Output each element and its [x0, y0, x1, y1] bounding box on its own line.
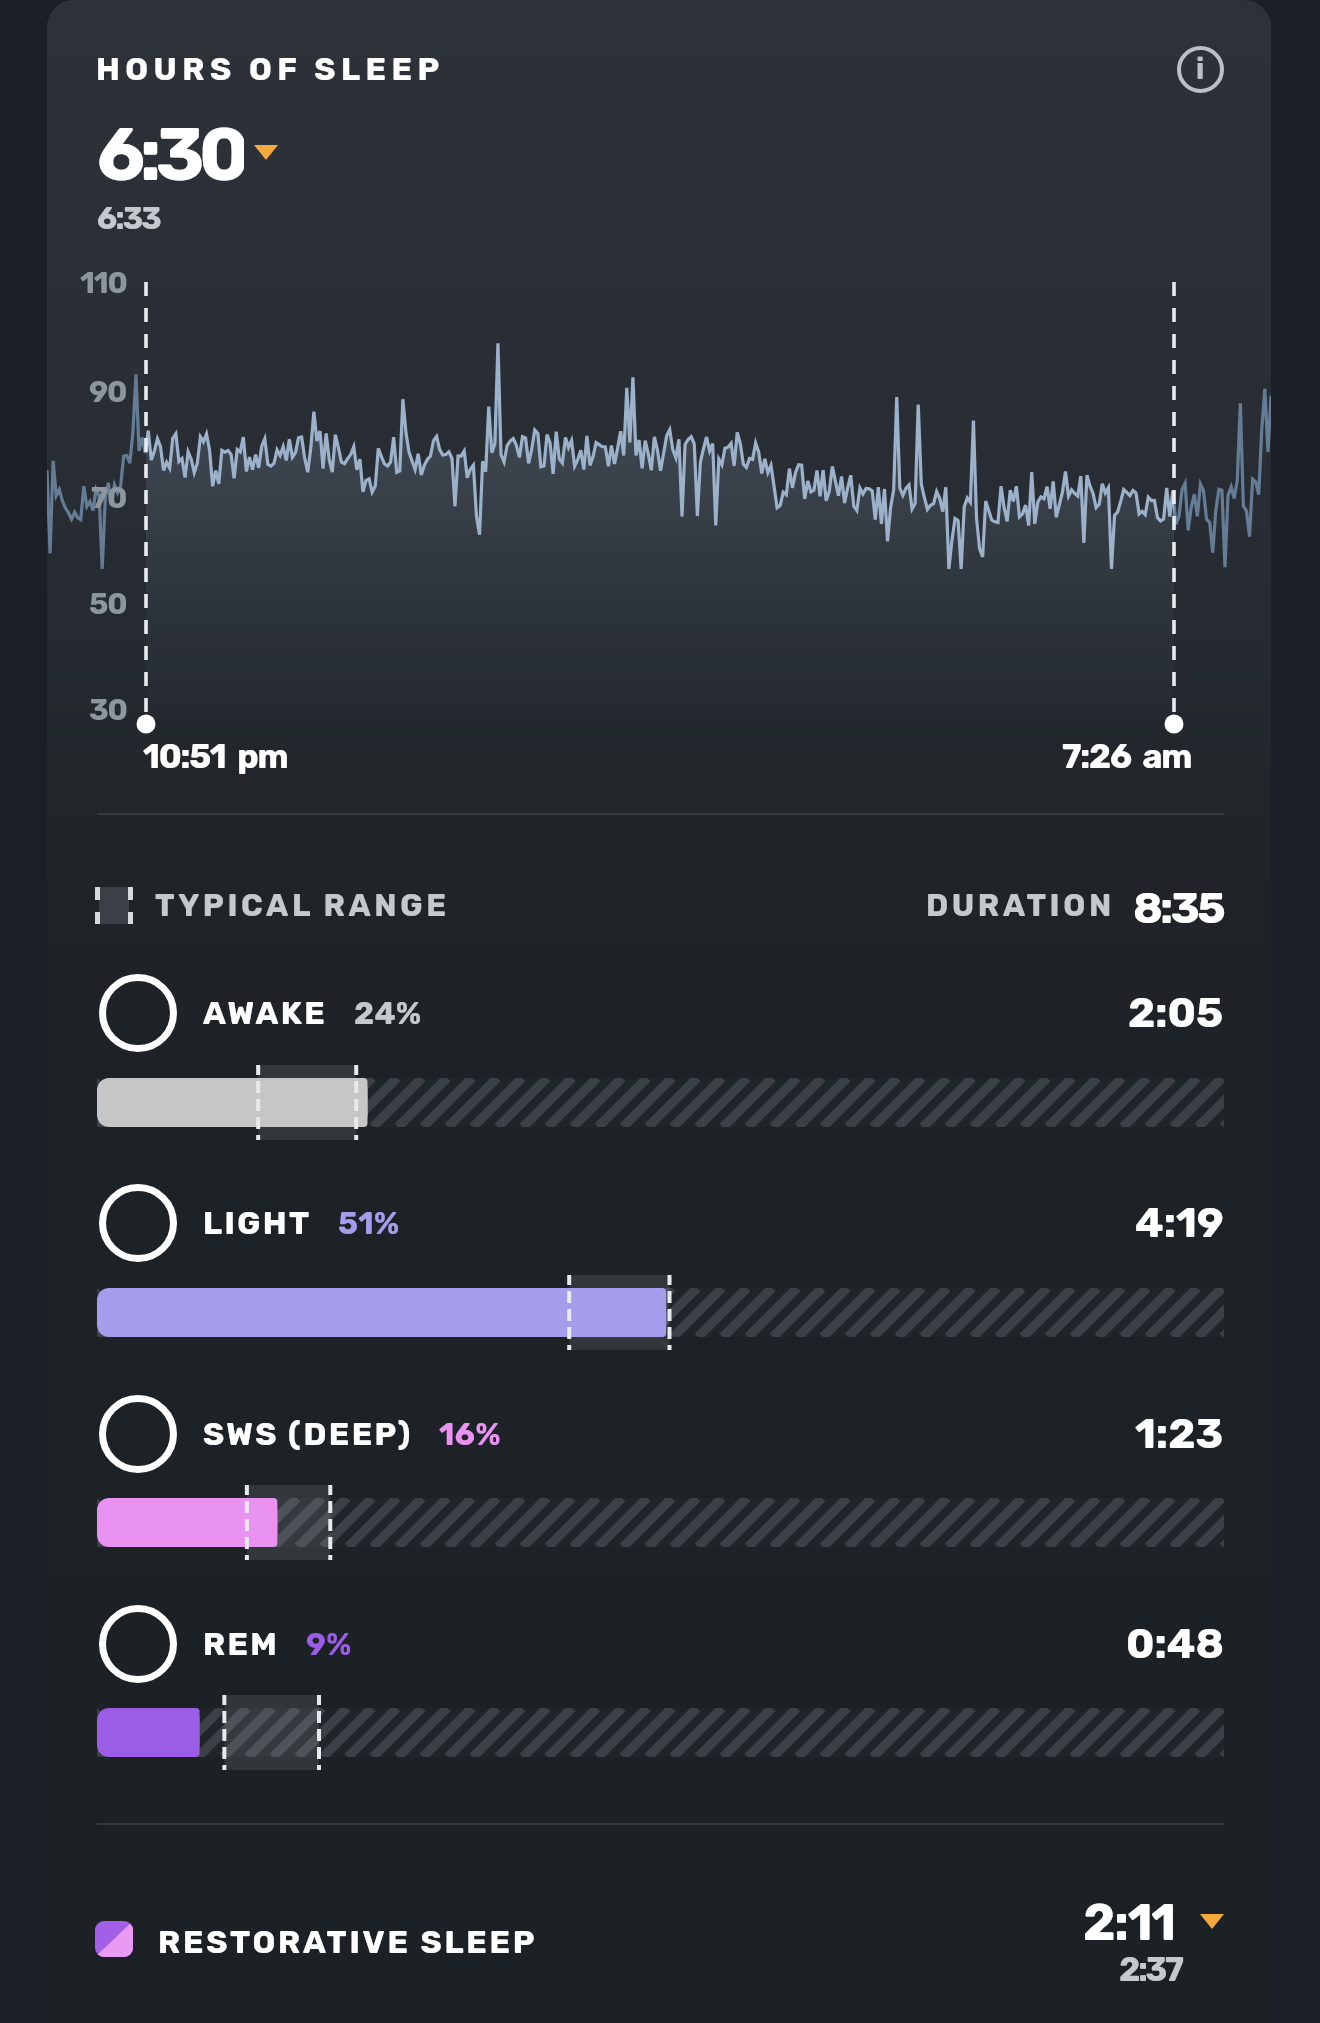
staticText: 110	[80, 265, 127, 301]
staticText: 50	[89, 586, 127, 622]
staticText: 8:35	[1133, 882, 1224, 934]
staticText: 9%	[306, 1626, 352, 1663]
staticText: 10:51 pm	[143, 736, 288, 776]
staticText: 2:05	[1128, 988, 1224, 1038]
staticText: 4:19	[1135, 1198, 1224, 1248]
staticText: 6:33	[97, 200, 160, 237]
staticText: 0:48	[1126, 1619, 1224, 1669]
staticText: 16%	[439, 1416, 501, 1453]
staticText: TYPICAL RANGE	[155, 887, 450, 924]
staticText: LIGHT	[203, 1204, 312, 1242]
staticText: 51%	[338, 1205, 400, 1242]
staticText: 90	[89, 374, 127, 410]
staticText: SWS (DEEP)	[203, 1415, 413, 1453]
button[interactable]: AWAKE	[47, 974, 1271, 1052]
staticText: AWAKE	[203, 994, 328, 1032]
button[interactable]: REM	[47, 1605, 1271, 1683]
button[interactable]: LIGHT	[47, 1184, 1271, 1262]
staticText: 24%	[354, 995, 422, 1032]
staticText: 2:11	[1083, 1893, 1175, 1952]
staticText: i	[1196, 52, 1205, 86]
button[interactable]: 6:30	[97, 111, 287, 187]
button[interactable]: Info	[1175, 44, 1226, 95]
staticText: DURATION	[926, 887, 1115, 924]
button[interactable]: RESTORATIVE SLEEP	[47, 1893, 1271, 1985]
staticText: 7:26 am	[1062, 736, 1192, 776]
staticText: 70	[91, 480, 127, 516]
staticText: REM	[203, 1625, 280, 1663]
staticText: HOURS OF SLEEP	[96, 50, 445, 88]
staticText: RESTORATIVE SLEEP	[158, 1923, 538, 1961]
button[interactable]: SWS (DEEP)	[47, 1395, 1271, 1473]
staticText: 2:37	[1119, 1950, 1182, 1989]
staticText: 1:23	[1135, 1409, 1224, 1459]
staticText: 6:30	[97, 111, 244, 187]
staticText: 30	[89, 692, 127, 728]
